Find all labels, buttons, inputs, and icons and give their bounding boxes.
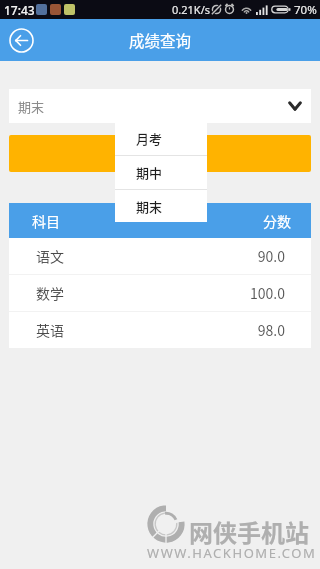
button[interactable]: 月考 bbox=[115, 122, 207, 155]
button[interactable]: Back bbox=[9, 28, 34, 53]
staticText: 70% bbox=[294, 2, 317, 18]
staticText: 期末 bbox=[18, 97, 45, 116]
staticText: 英语 bbox=[36, 320, 160, 340]
staticText: 数学 bbox=[36, 283, 160, 303]
staticText: 期中 bbox=[136, 163, 163, 182]
staticText: 17:43 bbox=[4, 2, 35, 18]
button[interactable]: 数学 bbox=[9, 275, 311, 311]
staticText: 90.0 bbox=[160, 246, 285, 266]
button[interactable]: 期末 bbox=[9, 89, 311, 123]
button[interactable]: 期末 bbox=[115, 190, 207, 222]
button[interactable]: 英语 bbox=[9, 312, 311, 348]
staticText: 分数 bbox=[160, 211, 291, 231]
button[interactable]: 期中 bbox=[115, 156, 207, 189]
staticText: WWW.HACKHOME.COM bbox=[147, 544, 317, 562]
staticText: 98.0 bbox=[160, 320, 285, 340]
staticText: 月考 bbox=[136, 129, 163, 148]
staticText: 语文 bbox=[36, 246, 160, 266]
button[interactable] bbox=[9, 135, 311, 172]
staticText: 网侠手机站 bbox=[189, 514, 309, 549]
staticText: 0.21K/s bbox=[172, 2, 210, 17]
staticText: 科目 bbox=[32, 211, 160, 231]
staticText: 100.0 bbox=[160, 283, 285, 303]
staticText: 期末 bbox=[136, 197, 163, 216]
button[interactable]: 语文 bbox=[9, 238, 311, 274]
staticText: 成绩查询 bbox=[129, 29, 192, 51]
